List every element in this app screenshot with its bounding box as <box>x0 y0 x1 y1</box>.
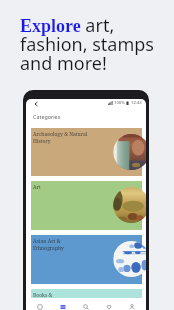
staticText: Explore art, fashion, stamps and more! <box>20 13 154 75</box>
button[interactable]: Back <box>31 99 41 109</box>
staticText: Categories <box>33 113 61 120</box>
button[interactable]: Art <box>31 181 142 230</box>
staticText: Books & <box>33 292 53 298</box>
staticText: Art <box>33 184 41 191</box>
button[interactable]: Archaeology & Natural History <box>31 128 142 176</box>
button[interactable]: Search <box>77 300 95 310</box>
staticText: 100% <box>114 100 125 106</box>
staticText: 12:43 <box>131 100 142 106</box>
button[interactable]: Favourites <box>100 300 118 310</box>
staticText: Archaeology & Natural History <box>33 131 88 144</box>
button[interactable]: Books & <box>31 289 142 298</box>
button[interactable]: Account <box>123 300 141 310</box>
button[interactable]: Categories <box>54 300 72 310</box>
button[interactable]: Home <box>31 300 49 310</box>
staticText: Asian Art & Ethnography <box>33 238 64 251</box>
button[interactable]: Asian Art & Ethnography <box>31 235 142 284</box>
